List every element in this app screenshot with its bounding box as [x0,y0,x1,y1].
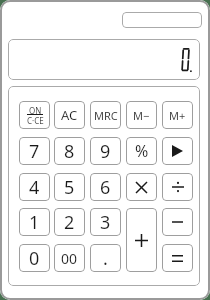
button[interactable]: 3 [90,208,121,236]
other: Minus [172,220,183,224]
button[interactable]: 6 [90,173,121,201]
staticText: 0 [29,246,40,271]
button[interactable]: Minus [162,208,193,236]
staticText: 4 [29,175,40,200]
staticText: 8 [64,139,75,164]
button[interactable]: 0 [19,244,50,272]
staticText: 6 [100,175,111,200]
button[interactable]: 8 [54,137,85,165]
button[interactable]: 4 [19,173,50,201]
button[interactable]: Multiply [126,173,157,201]
staticText: MRC [94,108,118,123]
button[interactable]: 00 [54,244,85,272]
staticText: 7 [29,139,40,164]
button[interactable]: 2 [54,208,85,236]
button[interactable]: 5 [54,173,85,201]
button[interactable]: 9 [90,137,121,165]
staticText: 3 [100,210,111,235]
button[interactable]: Equals [162,244,193,272]
button[interactable]: AC [54,101,85,129]
other: Equals [172,255,183,262]
button[interactable]: M− [126,101,157,129]
other: Right [172,145,183,157]
other: Multiply [136,182,147,193]
button[interactable]: 1 [19,208,50,236]
button[interactable]: Plus [126,208,157,272]
button[interactable]: Right [162,137,193,165]
staticText: 1 [29,210,40,235]
staticText: 00 [61,249,78,268]
button[interactable]: 7 [19,137,50,165]
other: Plus [135,234,148,247]
staticText: C·CE [27,115,44,126]
staticText: 2 [64,210,75,235]
button[interactable]: Divide [162,173,193,201]
staticText: M− [133,108,150,123]
staticText: 5 [64,175,75,200]
staticText: % [135,140,149,162]
staticText: M+ [169,108,186,123]
other: Divide [172,181,184,193]
button[interactable]: MRC [90,101,121,129]
button[interactable]: M+ [162,101,193,129]
staticText: 9 [100,139,111,164]
button[interactable]: % [126,137,157,165]
staticText: AC [61,106,78,124]
staticText: ON [29,105,42,116]
button[interactable]: . [90,244,121,272]
staticText: . [103,246,108,271]
button[interactable]: ON [19,101,50,129]
